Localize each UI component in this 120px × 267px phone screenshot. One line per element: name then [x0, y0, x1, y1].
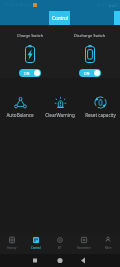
staticText: Mine: [105, 246, 112, 250]
staticText: AutoBalance: [6, 112, 34, 118]
staticText: History: [7, 246, 17, 250]
staticText: Reset capacity: [85, 112, 116, 118]
staticText: Control: [31, 246, 41, 250]
staticText: Parameter: [77, 246, 91, 250]
staticText: ON: [84, 71, 90, 76]
staticText: Discharge Switch: [74, 33, 106, 38]
button[interactable]: Parameter: [72, 233, 96, 254]
staticText: ON: [24, 71, 30, 76]
button[interactable]: ON: [19, 69, 41, 77]
button[interactable]: ClearWarning: [40, 78, 80, 122]
button[interactable]: Mine: [96, 233, 120, 254]
button[interactable]: ON: [79, 69, 101, 77]
staticText: Control: [52, 15, 68, 21]
staticText: BT: [58, 246, 62, 250]
button[interactable]: Reset capacity: [80, 78, 120, 122]
staticText: Charge Switch: [17, 33, 44, 38]
staticText: ClearWarning: [45, 112, 75, 118]
button[interactable]: AutoBalance: [0, 78, 40, 122]
button[interactable]: BT: [48, 233, 72, 254]
button[interactable]: Control: [49, 11, 70, 25]
button[interactable]: Charge Switch: [0, 25, 60, 78]
button[interactable]: Control: [24, 233, 48, 254]
button[interactable]: History: [0, 233, 24, 254]
button[interactable]: Discharge Switch: [60, 25, 120, 78]
